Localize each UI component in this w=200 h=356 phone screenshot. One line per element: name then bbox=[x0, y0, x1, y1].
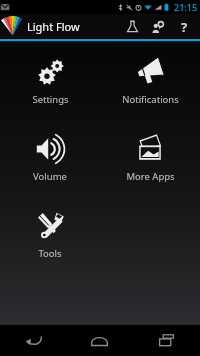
staticText: 21:15 bbox=[174, 1, 198, 13]
button[interactable]: Recent apps bbox=[133, 325, 200, 356]
staticText: ? bbox=[181, 18, 188, 36]
button[interactable]: Beta test bbox=[119, 14, 145, 39]
button[interactable]: Help bbox=[171, 14, 197, 39]
button[interactable]: Home bbox=[66, 325, 133, 356]
button[interactable]: More Apps bbox=[100, 134, 200, 183]
button[interactable]: Contact support bbox=[145, 14, 171, 39]
staticText: Settings bbox=[32, 93, 69, 106]
staticText: Tools bbox=[38, 247, 62, 260]
button[interactable]: Tools bbox=[0, 211, 100, 260]
button[interactable]: Settings bbox=[0, 57, 100, 106]
staticText: Volume bbox=[33, 170, 67, 183]
button[interactable]: Notifications bbox=[100, 57, 200, 106]
staticText: Light Flow bbox=[27, 19, 80, 34]
staticText: Notifications bbox=[122, 93, 179, 106]
button[interactable]: Volume bbox=[0, 134, 100, 183]
button[interactable]: Back bbox=[0, 325, 66, 356]
staticText: More Apps bbox=[126, 170, 175, 183]
